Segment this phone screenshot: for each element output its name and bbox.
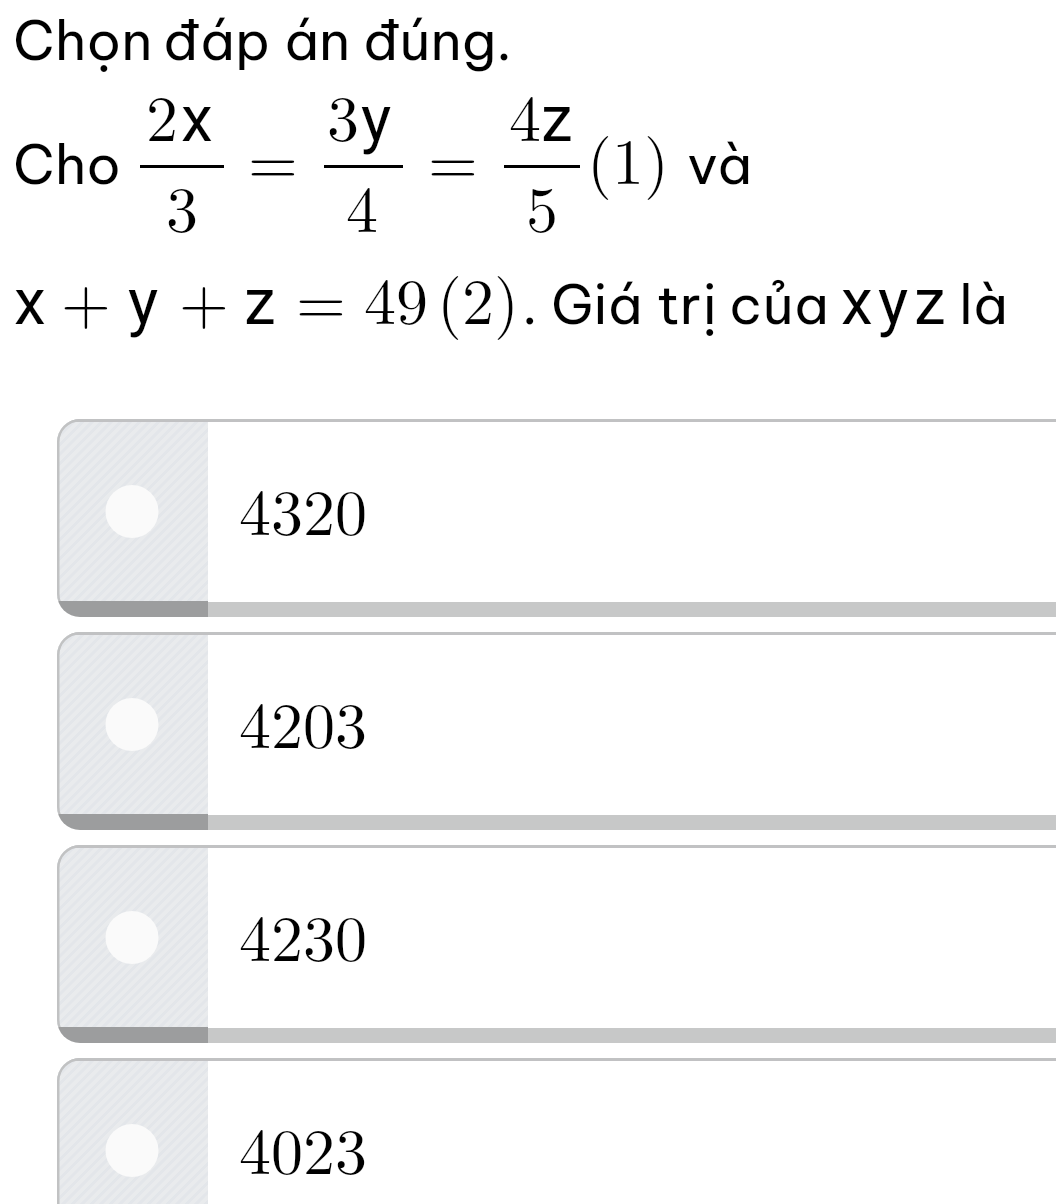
staticText: Chọn [13, 6, 153, 74]
staticText: z [914, 265, 946, 340]
staticText: 4320 [239, 463, 367, 554]
staticText: trị [657, 270, 718, 338]
button[interactable]: Answer 4320 [57, 419, 1056, 617]
staticText: 3 [166, 160, 198, 251]
staticText: 3 [327, 69, 359, 160]
staticText: 4230 [239, 889, 367, 980]
staticText: 2 [146, 69, 178, 160]
staticText: y [128, 265, 159, 340]
staticText: và [687, 130, 753, 198]
staticText: 4023 [239, 1102, 367, 1193]
staticText: Giá [551, 270, 643, 338]
staticText: z [541, 82, 573, 157]
button[interactable]: Answer 4230 [57, 845, 1056, 1043]
staticText: án [284, 6, 351, 74]
staticText: của [729, 270, 829, 338]
staticText: (2) [437, 252, 519, 343]
staticText: 49 [364, 252, 428, 343]
staticText: x [181, 82, 213, 157]
staticText: (1) [587, 112, 669, 203]
staticText: = [428, 112, 478, 203]
button[interactable]: Answer 4023 [57, 1058, 1056, 1204]
staticText: + [179, 252, 229, 343]
staticText: = [296, 252, 346, 343]
staticText: x [841, 265, 873, 340]
staticText: y [361, 82, 392, 157]
staticText: . [522, 270, 538, 338]
staticText: y [878, 265, 909, 340]
staticText: = [248, 112, 298, 203]
staticText: 4 [509, 69, 541, 160]
staticText: đáp [163, 6, 271, 74]
staticText: 4203 [239, 676, 367, 767]
staticText: là [959, 270, 1009, 338]
staticText: 5 [526, 160, 558, 251]
button[interactable]: Answer 4203 [57, 632, 1056, 830]
staticText: + [61, 252, 111, 343]
staticText: z [244, 265, 276, 340]
staticText: đúng. [363, 6, 512, 74]
staticText: 4 [346, 160, 378, 251]
staticText: Cho [13, 130, 121, 198]
staticText: x [14, 265, 46, 340]
